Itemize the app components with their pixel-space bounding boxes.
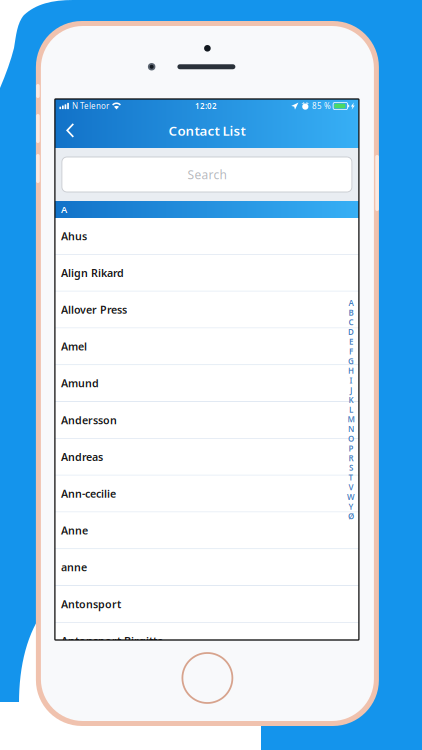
staticText: Ø [348, 511, 354, 521]
staticText: A [61, 203, 67, 216]
staticText: T [348, 472, 353, 483]
staticText: Y [348, 501, 353, 512]
staticText: V [348, 482, 353, 492]
button[interactable]: Antonsport Birgitte [55, 623, 359, 660]
staticText: M [347, 414, 354, 424]
staticText: Allover Press [61, 302, 127, 317]
staticText: J [350, 385, 352, 395]
staticText: anne [61, 560, 87, 574]
button[interactable]: Andersson [55, 402, 359, 439]
staticText: Anne [61, 523, 88, 537]
button[interactable]: anne [55, 549, 359, 586]
staticText: Ann-cecilie [61, 486, 116, 501]
button[interactable]: Ann-cecilie [55, 476, 359, 512]
button[interactable]: Amund [55, 365, 359, 402]
staticText: K [348, 394, 353, 405]
button[interactable]: Allover Press [55, 292, 359, 328]
staticText: N Telenor [72, 101, 109, 111]
staticText: Andersson [61, 413, 117, 427]
staticText: Antonsport [61, 597, 121, 611]
staticText: Andreas [61, 450, 103, 464]
button[interactable]: Antonsport [55, 586, 359, 623]
button[interactable]: Andreas [55, 439, 359, 476]
button[interactable]: Anne [55, 512, 359, 549]
button[interactable]: Back [55, 114, 109, 146]
staticText: H [348, 365, 354, 376]
staticText: Antonsport Birgitte [61, 634, 163, 648]
staticText: 12:02 [195, 101, 217, 111]
button[interactable]: Amel [55, 328, 359, 365]
staticText: C [348, 317, 353, 327]
staticText: 85 % [312, 101, 331, 111]
staticText: B [348, 307, 353, 318]
staticText: S [349, 462, 353, 473]
button[interactable]: Search [55, 148, 359, 201]
staticText: Align Rikard [61, 266, 124, 280]
button[interactable]: Ahus [55, 218, 359, 255]
staticText: Amel [61, 339, 87, 353]
staticText: P [348, 443, 353, 454]
staticText: Search [187, 166, 226, 182]
staticText: W [347, 491, 355, 502]
staticText: G [348, 356, 354, 366]
button[interactable]: Align Rikard [55, 255, 359, 292]
staticText: A [348, 297, 353, 308]
staticText: Amund [61, 376, 99, 390]
staticText: D [348, 327, 354, 337]
staticText: E [349, 336, 353, 347]
staticText: Contact List [168, 122, 245, 139]
staticText: N [348, 424, 354, 434]
staticText: I [349, 375, 352, 386]
staticText: O [348, 433, 354, 444]
staticText: Ahus [61, 229, 87, 243]
staticText: R [348, 453, 353, 463]
staticText: F [349, 346, 353, 357]
staticText: L [349, 404, 353, 415]
